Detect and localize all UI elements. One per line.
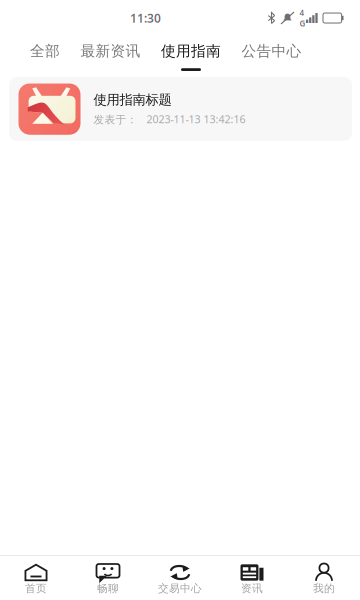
staticText: 4G — [299, 7, 305, 29]
staticText: 使用指南 — [161, 42, 221, 60]
staticText: 公告中心 — [241, 42, 301, 60]
staticText: 最新资讯 — [80, 42, 140, 60]
staticText: 畅聊 — [97, 582, 119, 595]
staticText: 我的 — [313, 582, 335, 595]
button[interactable]: 公告中心 — [241, 36, 301, 76]
button[interactable]: 使用指南 — [161, 36, 221, 76]
staticText: 交易中心 — [158, 582, 202, 595]
button[interactable]: 交易中心 — [144, 556, 216, 600]
staticText: 首页 — [25, 582, 47, 595]
staticText: 资讯 — [241, 582, 263, 595]
staticText: 11:30 — [130, 10, 161, 26]
button[interactable]: 我的 — [288, 556, 360, 600]
button[interactable]: 资讯 — [216, 556, 288, 600]
staticText: 使用指南标题 — [93, 92, 171, 108]
button[interactable]: 全部 — [30, 36, 60, 76]
staticText: 发表于： 2023-11-13 13:42:16 — [93, 112, 245, 126]
button[interactable]: 畅聊 — [72, 556, 144, 600]
staticText: 全部 — [30, 42, 60, 60]
button[interactable]: 最新资讯 — [80, 36, 140, 76]
button[interactable]: 使用指南标题 — [0, 76, 360, 141]
button[interactable]: 首页 — [0, 556, 72, 600]
